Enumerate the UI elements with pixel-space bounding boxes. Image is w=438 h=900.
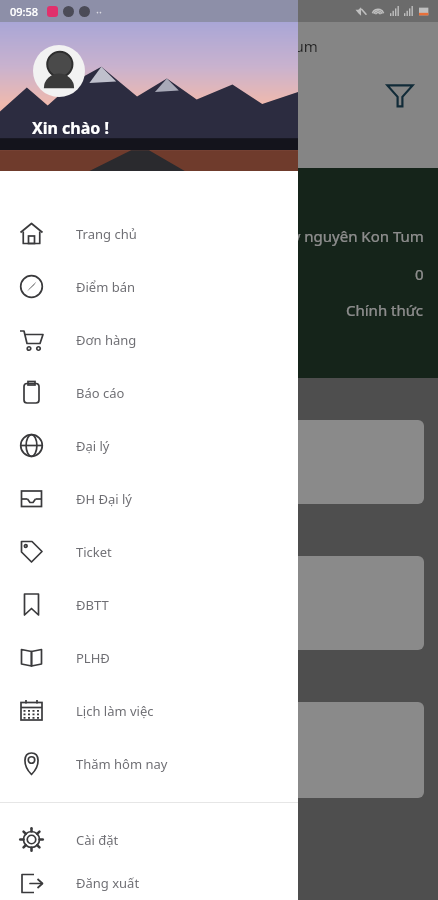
button[interactable]: Lịch làm việc: [0, 684, 298, 737]
staticText: Ticket: [76, 543, 112, 561]
staticText: 09:58: [10, 4, 39, 19]
staticText: ĐH Đại lý: [76, 490, 133, 508]
staticText: Nv tây nguyên Kon Tum: [256, 226, 424, 246]
button[interactable]: Profile photo: [33, 45, 85, 97]
staticText: PLHĐ: [76, 649, 110, 667]
staticText: Chính thức: [346, 300, 424, 320]
staticText: Trang chủ: [76, 225, 137, 243]
staticText: Báo cáo: [76, 384, 125, 402]
staticText: Đại lý: [76, 437, 110, 455]
button[interactable]: Đăng xuất: [0, 866, 298, 900]
button[interactable]: PLHĐ: [0, 631, 298, 684]
staticText: Nv tây nguyên Kon Tum: [150, 36, 318, 56]
button[interactable]: Đại lý: [0, 419, 298, 472]
button[interactable]: Cài đặt: [0, 813, 298, 866]
button[interactable]: Điểm bán: [0, 260, 298, 313]
button[interactable]: Đơn hàng: [0, 313, 298, 366]
button[interactable]: Thăm hôm nay: [0, 737, 298, 790]
button[interactable]: Trang chủ: [0, 207, 298, 260]
button[interactable]: Ticket: [0, 525, 298, 578]
button[interactable]: SỐ KH TC: [14, 420, 424, 504]
button[interactable]: CHƯA VT ĐÚNG TUYẾN: [14, 556, 424, 650]
button[interactable]: ĐBTT: [0, 578, 298, 631]
staticText: Đăng xuất: [76, 874, 140, 892]
button[interactable]: ĐH Đại lý: [0, 472, 298, 525]
staticText: Cài đặt: [76, 831, 119, 849]
staticText: Điểm bán: [76, 278, 136, 296]
staticText: 0: [415, 264, 424, 284]
button[interactable]: Báo cáo: [0, 366, 298, 419]
button[interactable]: Filter: [378, 73, 422, 117]
staticText: Lịch làm việc: [76, 702, 154, 720]
staticText: Thăm hôm nay: [76, 755, 168, 773]
button[interactable]: SỐ ĐƠN H TẮT: [14, 702, 424, 798]
staticText: ĐBTT: [76, 596, 109, 614]
staticText: Đơn hàng: [76, 331, 137, 349]
staticText: Xin chào !: [32, 117, 109, 139]
staticText: ··: [96, 4, 102, 19]
